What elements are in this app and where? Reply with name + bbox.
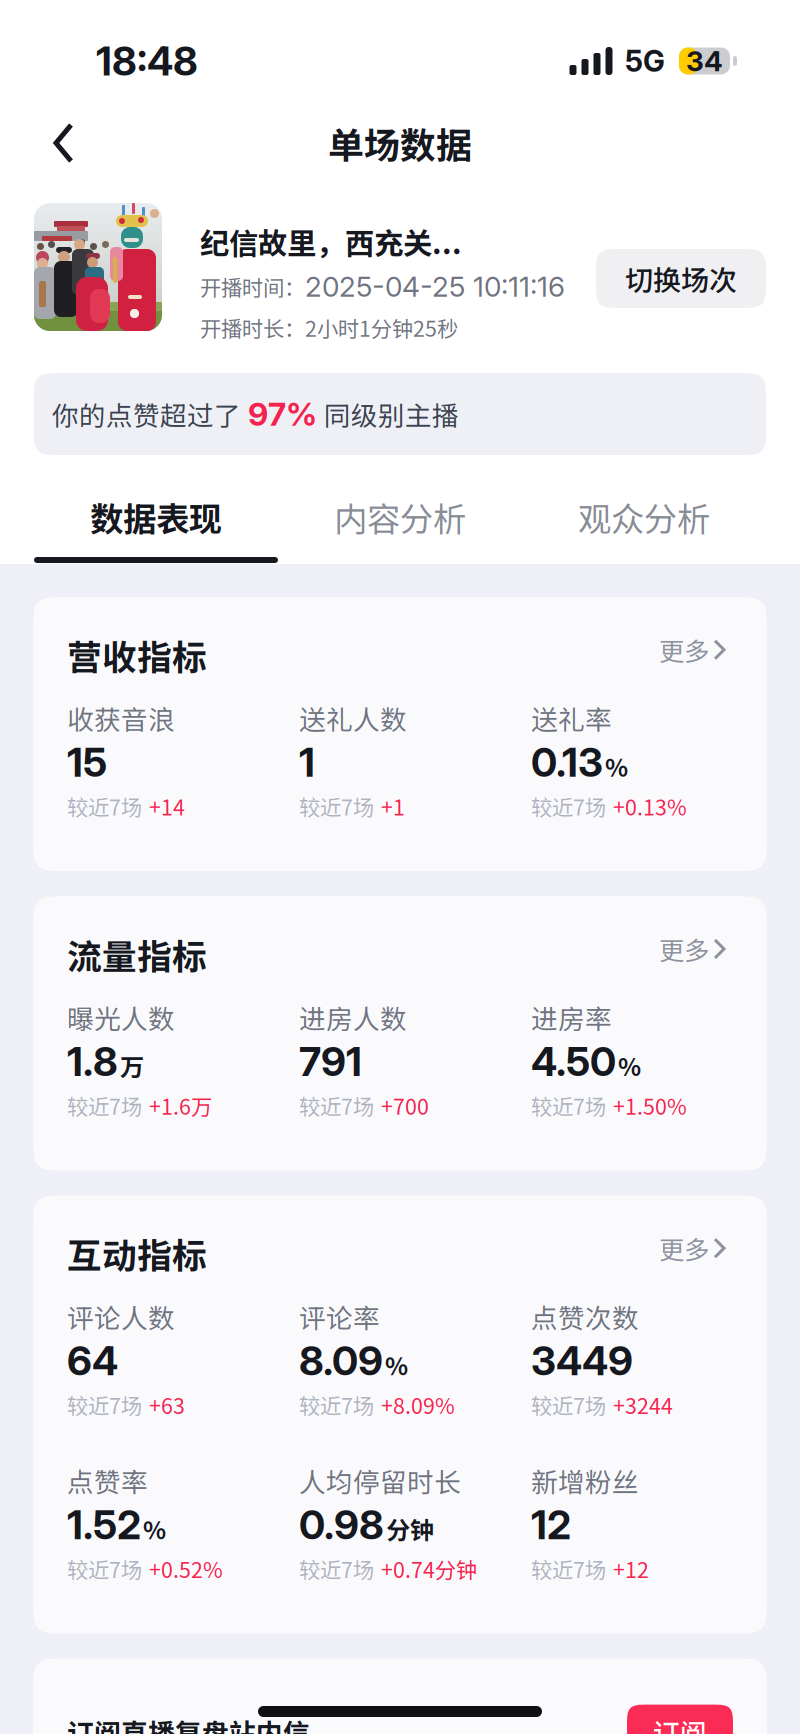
- staticText: +1: [381, 791, 405, 822]
- staticText: +0.74分钟: [381, 1553, 477, 1584]
- button[interactable]: 数据表现: [34, 491, 278, 563]
- staticText: +1.6万: [149, 1090, 212, 1121]
- staticText: 更多: [659, 931, 709, 967]
- staticText: 数据表现: [90, 493, 222, 541]
- staticText: 较近7场: [299, 791, 374, 822]
- button[interactable]: 切换场次: [596, 249, 766, 308]
- staticText: %: [605, 749, 628, 784]
- staticText: 较近7场: [299, 1389, 374, 1420]
- staticText: 同级别主播: [324, 395, 459, 433]
- staticText: 收获音浪: [67, 699, 175, 737]
- staticText: 万: [120, 1048, 144, 1083]
- staticText: 更多: [659, 1230, 709, 1266]
- staticText: 64: [67, 1336, 118, 1385]
- staticText: 12: [531, 1500, 571, 1549]
- staticText: 送礼人数: [299, 699, 407, 737]
- staticText: 1.8: [67, 1037, 118, 1086]
- staticText: %: [143, 1511, 166, 1546]
- staticText: 较近7场: [299, 1090, 374, 1121]
- staticText: 曝光人数: [67, 998, 175, 1037]
- staticText: 点赞次数: [531, 1297, 639, 1336]
- staticText: 较近7场: [67, 791, 142, 822]
- staticText: 流量指标: [67, 929, 207, 979]
- staticText: 2小时1分钟25秒: [305, 312, 458, 343]
- staticText: 进房率: [531, 998, 612, 1037]
- staticText: 0.98: [299, 1500, 384, 1549]
- staticText: +1.50%: [613, 1090, 687, 1121]
- staticText: 开播时间：: [200, 271, 305, 302]
- staticText: 互动指标: [67, 1228, 207, 1279]
- staticText: 8.09: [299, 1336, 383, 1385]
- staticText: +12: [613, 1553, 649, 1584]
- staticText: 较近7场: [67, 1090, 142, 1121]
- staticText: +0.52%: [149, 1553, 223, 1584]
- button[interactable]: 更多: [659, 634, 733, 676]
- staticText: 营收指标: [67, 630, 207, 680]
- staticText: +3244: [613, 1389, 673, 1420]
- staticText: 单场数据: [328, 117, 472, 169]
- staticText: 15: [67, 738, 107, 786]
- staticText: 新增粉丝: [531, 1461, 639, 1500]
- staticText: %: [385, 1347, 408, 1382]
- staticText: 4.50: [531, 1037, 616, 1086]
- staticText: 你的点赞超过了: [52, 395, 241, 433]
- staticText: 1.52: [67, 1500, 141, 1549]
- staticText: +700: [381, 1090, 429, 1121]
- button[interactable]: 返回: [28, 107, 99, 179]
- staticText: %: [618, 1048, 641, 1083]
- staticText: 较近7场: [531, 1389, 606, 1420]
- staticText: 评论率: [299, 1297, 380, 1336]
- staticText: 点赞率: [67, 1461, 148, 1500]
- staticText: 较近7场: [531, 791, 606, 822]
- staticText: 较近7场: [67, 1389, 142, 1420]
- button[interactable]: 更多: [659, 1232, 733, 1274]
- staticText: 评论人数: [67, 1297, 175, 1336]
- button[interactable]: 更多: [659, 933, 733, 975]
- button[interactable]: 订阅: [627, 1705, 733, 1734]
- staticText: 较近7场: [67, 1553, 142, 1584]
- staticText: +63: [149, 1389, 185, 1420]
- staticText: 订阅直播复盘站内信: [67, 1712, 310, 1734]
- staticText: 1: [299, 738, 315, 786]
- staticText: 人均停留时长: [299, 1461, 461, 1500]
- staticText: +0.13%: [613, 791, 687, 822]
- staticText: 较近7场: [299, 1553, 374, 1584]
- staticText: 内容分析: [334, 493, 466, 541]
- staticText: 开播时长：: [200, 312, 305, 343]
- staticText: 97%: [248, 395, 317, 433]
- staticText: 切换场次: [625, 258, 737, 299]
- staticText: 2025-04-25 10:11:16: [305, 270, 565, 303]
- button[interactable]: 观众分析: [522, 491, 766, 543]
- staticText: 18:48: [96, 37, 198, 85]
- staticText: 进房人数: [299, 998, 407, 1037]
- staticText: 更多: [659, 631, 709, 668]
- staticText: 订阅: [653, 1712, 707, 1734]
- staticText: +14: [149, 791, 185, 822]
- staticText: 0.13: [531, 738, 603, 786]
- staticText: 分钟: [386, 1511, 434, 1546]
- button[interactable]: 内容分析: [278, 491, 522, 543]
- staticText: 较近7场: [531, 1553, 606, 1584]
- staticText: 纪信故里，西充关...: [200, 220, 462, 263]
- staticText: 5G: [625, 43, 665, 79]
- staticText: 较近7场: [531, 1090, 606, 1121]
- staticText: +8.09%: [381, 1389, 455, 1420]
- staticText: 送礼率: [531, 699, 612, 737]
- staticText: 791: [299, 1037, 362, 1086]
- staticText: 观众分析: [578, 493, 710, 541]
- staticText: 34: [686, 44, 723, 78]
- staticText: 3449: [531, 1336, 633, 1385]
